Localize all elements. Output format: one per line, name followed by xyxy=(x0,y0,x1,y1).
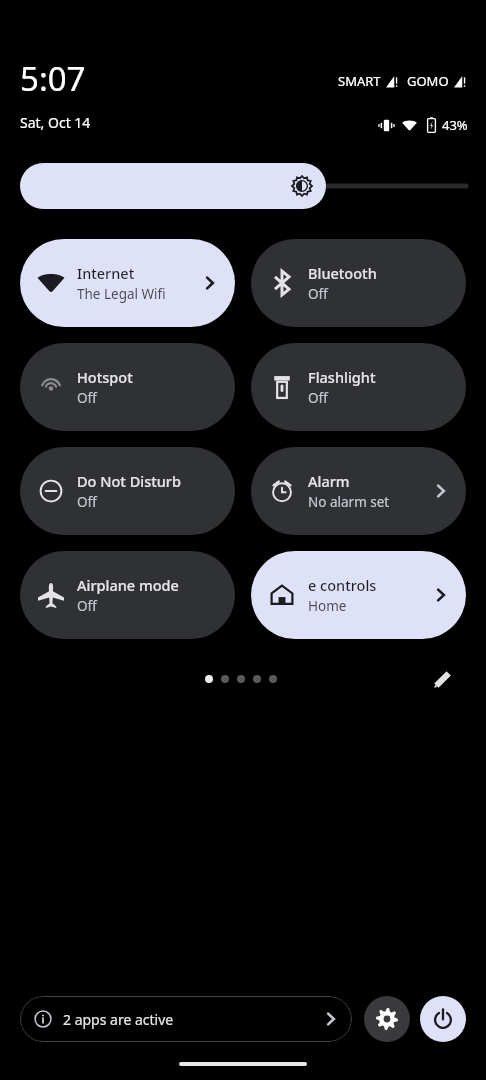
staticText: 2 apps are active xyxy=(63,1010,322,1029)
button[interactable]: Edit tiles xyxy=(428,664,458,694)
staticText: Home xyxy=(308,597,347,615)
staticText: Off xyxy=(308,285,328,303)
button[interactable]: Airplane mode xyxy=(20,551,235,639)
staticText: Airplane mode xyxy=(77,575,179,595)
staticText: GOMO xyxy=(407,72,449,90)
staticText: Off xyxy=(77,597,97,615)
button[interactable]: Hotspot xyxy=(20,343,235,431)
staticText: 43% xyxy=(442,116,468,134)
button[interactable]: Settings xyxy=(364,996,410,1042)
button[interactable]: e controls xyxy=(251,551,466,639)
staticText: The Legal Wifi xyxy=(77,285,166,303)
button[interactable]: Brightness xyxy=(20,163,326,209)
staticText: 5:07 xyxy=(20,56,86,101)
button[interactable]: Internet xyxy=(20,239,235,327)
button[interactable]: Do Not Disturb xyxy=(20,447,235,535)
button[interactable]: 2 apps are active xyxy=(20,996,352,1042)
staticText: Sat, Oct 14 xyxy=(20,113,91,132)
button[interactable]: Power xyxy=(420,996,466,1042)
staticText: Do Not Disturb xyxy=(77,471,181,491)
staticText: Off xyxy=(77,389,97,407)
staticText: Off xyxy=(308,389,328,407)
button[interactable]: Bluetooth xyxy=(251,239,466,327)
staticText: Off xyxy=(77,493,97,511)
staticText: Hotspot xyxy=(77,367,133,387)
staticText: e controls xyxy=(308,575,377,595)
staticText: Bluetooth xyxy=(308,263,377,283)
staticText: Internet xyxy=(77,263,135,283)
button[interactable]: Alarm xyxy=(251,447,466,535)
staticText: Flashlight xyxy=(308,367,376,387)
staticText: Alarm xyxy=(308,471,350,491)
staticText: No alarm set xyxy=(308,493,390,511)
button[interactable]: Flashlight xyxy=(251,343,466,431)
staticText: SMART xyxy=(338,72,381,90)
